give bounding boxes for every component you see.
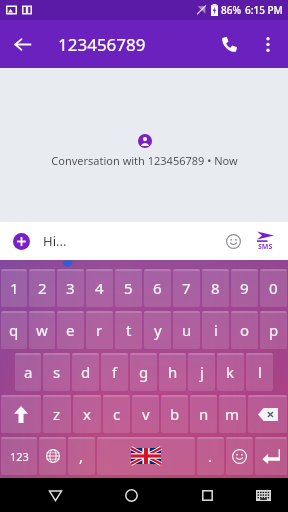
button[interactable]: Emoji [226,437,253,475]
staticText: m [225,404,240,424]
staticText: x [83,404,91,424]
staticText: 3 [66,278,75,298]
staticText: 123456789 [58,33,208,56]
staticText: c [113,404,121,424]
button[interactable]: r [86,311,113,349]
button[interactable]: Attach [8,228,34,254]
staticText: 2 [38,278,47,298]
button[interactable]: k [217,353,244,391]
button[interactable]: Shift [1,395,41,433]
button[interactable]: 9 [231,269,258,307]
staticText: u [182,320,192,340]
button[interactable]: g [130,353,157,391]
button[interactable]: Send SMS [250,226,280,256]
button[interactable]: 6 [144,269,171,307]
staticText: 9 [240,278,249,298]
staticText: . [208,446,213,466]
staticText: j [200,362,204,382]
button[interactable]: c [103,395,130,433]
staticText: 8 [211,278,220,298]
staticText: t [126,320,132,340]
staticText: d [81,362,91,382]
staticText: q [9,320,19,340]
staticText: i [214,320,218,340]
button[interactable]: t [115,311,142,349]
button[interactable]: y [144,311,171,349]
staticText: 123 [10,449,29,464]
button[interactable]: 3 [57,269,84,307]
staticText: 5 [124,278,133,298]
button[interactable]: 5 [115,269,142,307]
button[interactable]: e [57,311,84,349]
button[interactable]: 0 [260,269,287,307]
button[interactable]: h [159,353,186,391]
button[interactable]: d [72,353,99,391]
button[interactable]: l [246,353,273,391]
button[interactable]: m [219,395,246,433]
button[interactable]: j [188,353,215,391]
staticText: 4 [95,278,104,298]
staticText: a [24,362,33,382]
staticText: SMS [258,242,273,252]
staticText: , [79,446,84,466]
button[interactable]: 4 [86,269,113,307]
button[interactable]: b [161,395,188,433]
button[interactable]: 7 [173,269,200,307]
staticText: 6 [153,278,162,298]
staticText: b [170,404,180,424]
button[interactable]: s [43,353,70,391]
button[interactable]: Change language [39,437,66,475]
button[interactable]: f [101,353,128,391]
button[interactable]: 2 [29,269,55,307]
button[interactable]: Switch keyboard [248,480,278,510]
button[interactable]: Recents [190,478,224,512]
staticText: Conversation with 123456789 • Now [51,153,238,168]
button[interactable]: v [132,395,159,433]
button[interactable]: q [1,311,27,349]
button[interactable]: x [73,395,101,433]
staticText: k [226,362,235,382]
button[interactable]: w [29,311,55,349]
button[interactable]: Call [208,23,250,65]
staticText: v [142,404,150,424]
staticText: h [168,362,178,382]
button[interactable]: Space [97,437,195,475]
staticText: 0 [269,278,278,298]
button[interactable]: , [68,437,95,475]
staticText: p [269,320,279,340]
staticText: s [53,362,61,382]
button[interactable]: p [260,311,287,349]
staticText: e [66,320,75,340]
button[interactable]: Enter [255,437,287,475]
button[interactable]: a [15,353,41,391]
button[interactable]: Backspace [248,395,287,433]
button[interactable]: Back [38,478,72,512]
button[interactable]: z [43,395,71,433]
button[interactable]: 1 [1,269,27,307]
button[interactable]: i [202,311,229,349]
staticText: 86% [221,3,241,17]
staticText: o [240,320,250,340]
staticText: 7 [182,278,191,298]
button[interactable]: Home [114,478,148,512]
button[interactable]: . [197,437,224,475]
button[interactable]: 8 [202,269,229,307]
staticText: 1 [10,278,19,298]
button[interactable]: 123 [1,437,37,475]
staticText: w [36,320,48,340]
staticText: y [154,320,162,340]
staticText: 6:15 PM [245,3,283,17]
staticText: n [199,404,209,424]
button[interactable]: n [190,395,217,433]
staticText: z [53,404,61,424]
staticText: l [258,362,262,382]
button[interactable]: More options [250,26,286,62]
staticText: g [139,362,149,382]
button[interactable]: Back [0,22,44,66]
staticText: f [112,362,118,382]
staticText: Hi... [43,232,220,250]
button[interactable]: Emoji [220,228,246,254]
button[interactable]: u [173,311,200,349]
button[interactable]: o [231,311,258,349]
staticText: r [96,320,103,340]
